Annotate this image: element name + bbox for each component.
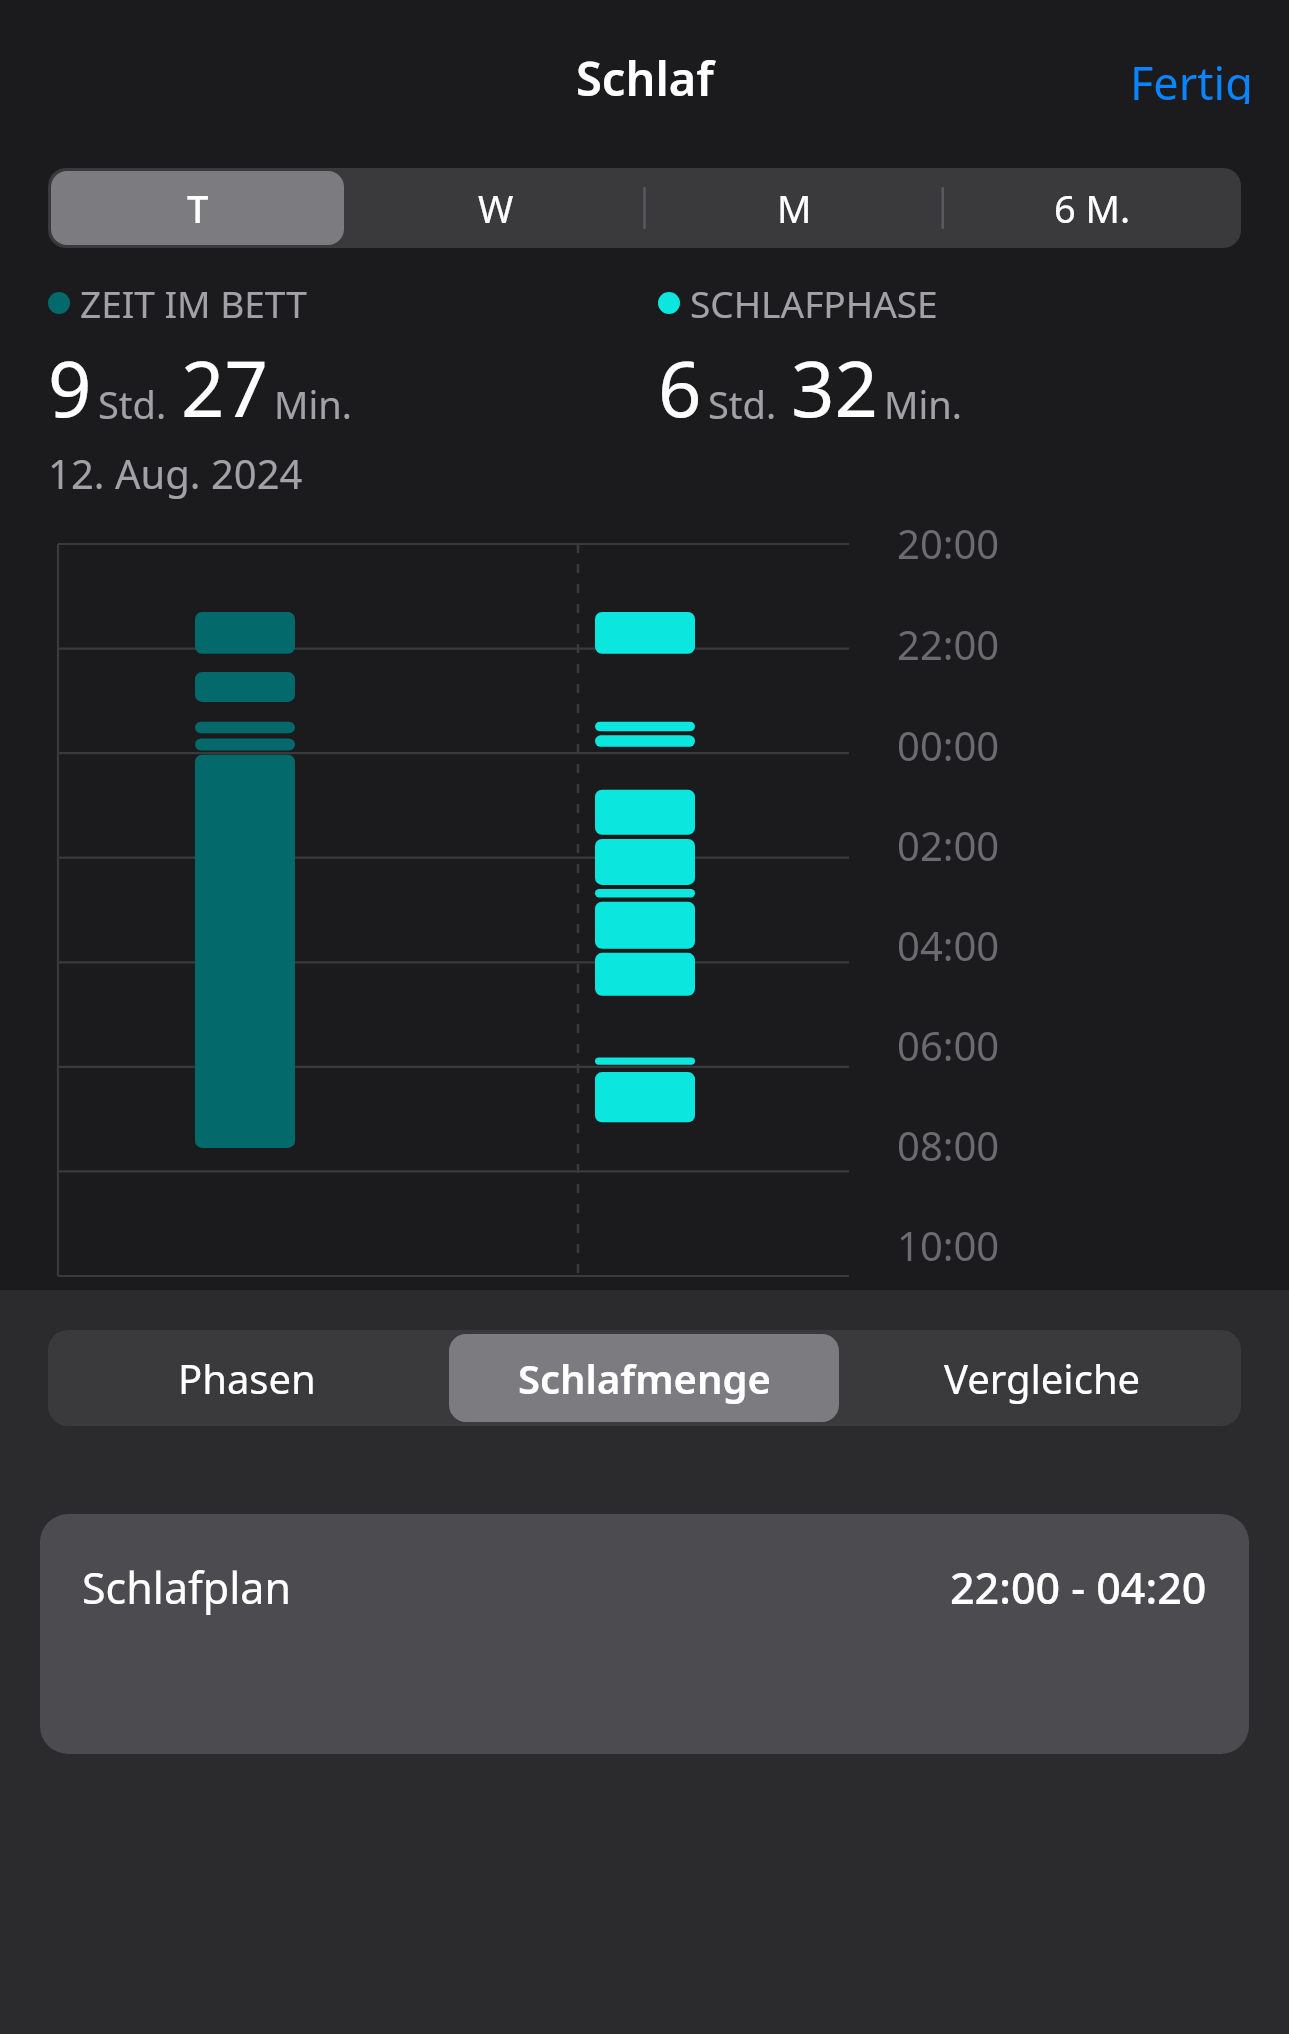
button[interactable]: M bbox=[648, 171, 940, 245]
staticText: W bbox=[478, 182, 514, 234]
staticText: 32 bbox=[791, 336, 878, 440]
staticText: 10:00 bbox=[897, 1218, 1000, 1268]
button[interactable]: Fertig bbox=[1094, 38, 1289, 118]
staticText: Schlafplan bbox=[82, 1558, 292, 1617]
staticText: 22:00 bbox=[897, 617, 1000, 671]
staticText: SCHLAFPHASE bbox=[690, 278, 938, 328]
staticText: 02:00 bbox=[897, 818, 1000, 872]
button[interactable]: Phasen bbox=[52, 1334, 441, 1422]
staticText: 6 bbox=[658, 336, 702, 440]
staticText: 22:00 - 04:20 bbox=[950, 1558, 1207, 1617]
staticText: 9 bbox=[48, 336, 92, 440]
staticText: Min. bbox=[884, 378, 962, 430]
staticText: 27 bbox=[181, 336, 268, 440]
staticText: Schlaf bbox=[576, 46, 714, 110]
staticText: Fertig bbox=[1130, 52, 1253, 104]
button[interactable]: Schlafplan bbox=[40, 1514, 1249, 1754]
staticText: 12. Aug. 2024 bbox=[48, 446, 303, 500]
staticText: ZEIT IM BETT bbox=[80, 278, 307, 328]
staticText: Std. bbox=[98, 378, 167, 430]
button[interactable]: T bbox=[51, 171, 344, 245]
staticText: Min. bbox=[274, 378, 352, 430]
button[interactable]: Vergleiche bbox=[847, 1334, 1237, 1422]
staticText: 20:00 bbox=[897, 516, 1000, 570]
button[interactable]: W bbox=[350, 171, 642, 245]
staticText: 08:00 bbox=[897, 1118, 1000, 1172]
staticText: 04:00 bbox=[897, 918, 1000, 972]
staticText: M bbox=[777, 182, 812, 234]
staticText: 00:00 bbox=[897, 718, 1000, 772]
staticText: Schlafmenge bbox=[518, 1351, 771, 1405]
button[interactable]: Schlafmenge bbox=[449, 1334, 839, 1422]
staticText: 6 M. bbox=[1054, 182, 1131, 234]
staticText: Std. bbox=[708, 378, 777, 430]
staticText: T bbox=[187, 182, 209, 234]
staticText: Vergleiche bbox=[944, 1351, 1141, 1405]
staticText: 06:00 bbox=[897, 1018, 1000, 1072]
button[interactable]: 6 M. bbox=[946, 171, 1238, 245]
staticText: Phasen bbox=[178, 1351, 316, 1405]
